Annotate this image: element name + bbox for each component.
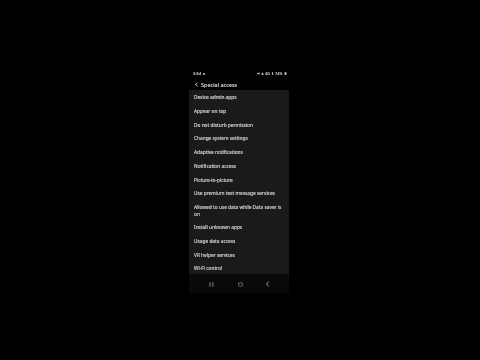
button[interactable]: Home [234,278,246,290]
staticText: Appear on top [194,108,227,115]
staticText: 74% [275,71,283,76]
button[interactable]: Use premium text message services [189,186,289,200]
staticText: Allowed to use data while Data saver is … [194,204,285,217]
button[interactable]: Back [189,79,289,90]
staticText: Use premium text message services [194,190,275,197]
staticText: Picture-in-picture [194,177,233,184]
button[interactable]: Appear on top [189,104,289,118]
button[interactable]: VR helper services [189,248,289,262]
button[interactable]: Device admin apps [189,90,289,104]
button[interactable]: Wi-Fi control [189,261,289,275]
staticText: Device admin apps [194,94,237,101]
staticText: 3:54 [193,71,202,77]
button[interactable]: Change system settings [189,131,289,145]
button[interactable]: Recent apps [205,278,217,290]
staticText: Notification access [194,163,237,170]
staticText: Wi-Fi control [194,265,223,272]
staticText: Do not disturb permission [194,122,253,129]
button[interactable]: Install unknown apps [189,220,289,234]
button[interactable]: Notification access [189,159,289,173]
staticText: Special access [201,81,238,88]
other: Back [193,81,200,88]
staticText: Usage data access [194,238,236,245]
button[interactable]: Picture-in-picture [189,173,289,187]
button[interactable]: Usage data access [189,234,289,248]
staticText: VR helper services [194,252,235,259]
staticText: 4G [265,71,270,76]
button[interactable]: Back [261,278,273,290]
staticText: Adaptive notifications [194,149,243,156]
staticText: Install unknown apps [194,224,243,231]
staticText: Change system settings [194,135,248,142]
button[interactable]: Do not disturb permission [189,118,289,132]
button[interactable]: Adaptive notifications [189,145,289,159]
button[interactable]: Allowed to use data while Data saver is … [189,200,289,220]
